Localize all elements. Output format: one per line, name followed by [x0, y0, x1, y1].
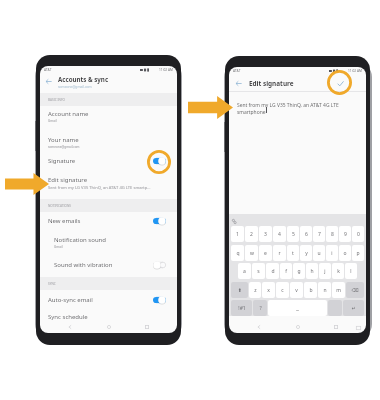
staticText: ⎵ [296, 306, 299, 311]
button[interactable]: y [300, 245, 312, 261]
button[interactable]: 1 [231, 226, 244, 242]
staticText: z [254, 287, 257, 294]
button[interactable]: Save [335, 78, 346, 89]
button[interactable]: 2 [245, 226, 258, 242]
staticText: Accounts & sync [58, 75, 109, 83]
button[interactable]: 0 [352, 226, 364, 242]
staticText: l [350, 268, 352, 275]
button[interactable]: g [293, 263, 305, 279]
staticText: Sound with vibration [54, 261, 113, 269]
button[interactable]: Recents [139, 321, 155, 333]
button[interactable]: z [249, 282, 261, 298]
staticText: someone@gmail.com [48, 145, 80, 149]
button[interactable]: t [287, 245, 299, 261]
button[interactable]: ⎵ [268, 300, 327, 316]
button[interactable]: l [345, 263, 357, 279]
staticText: Auto-sync email [48, 296, 93, 304]
button[interactable]: Sound with vibration [40, 258, 177, 272]
button[interactable]: Notification sound [40, 234, 177, 254]
button[interactable]: ⌫ [346, 282, 364, 298]
button[interactable]: 5 [287, 226, 299, 242]
button[interactable]: Edit signature [40, 174, 177, 194]
button[interactable]: ⬆ [231, 282, 248, 298]
button[interactable]: s [252, 263, 265, 279]
button[interactable]: 3 [259, 226, 272, 242]
staticText: p [356, 250, 360, 257]
button[interactable]: ? [253, 300, 267, 316]
staticText: c [281, 287, 284, 294]
button[interactable]: Toggle [153, 157, 166, 165]
staticText: y [305, 250, 308, 257]
button[interactable]: 9 [339, 226, 351, 242]
staticText: ↵ [351, 305, 356, 311]
staticText: SYNC [48, 282, 56, 286]
staticText: s [257, 268, 260, 275]
staticText: Signature [48, 157, 76, 165]
button[interactable]: Home [101, 321, 117, 333]
staticText: AT&T [233, 69, 241, 73]
staticText: d [271, 268, 275, 275]
staticText: Your name [48, 136, 79, 144]
button[interactable]: Back [40, 72, 177, 91]
button[interactable]: !#1 [231, 300, 252, 316]
button[interactable]: o [339, 245, 351, 261]
button[interactable]: k [332, 263, 344, 279]
staticText: 1 [236, 231, 239, 238]
staticText: !#1 [238, 305, 246, 312]
button[interactable]: 7 [313, 226, 325, 242]
staticText: Account name [48, 110, 89, 118]
staticText: t [292, 250, 294, 257]
button[interactable]: q [231, 245, 244, 261]
button[interactable]: Recents [328, 321, 344, 333]
staticText: i [331, 250, 333, 257]
button[interactable]: Account name [40, 108, 177, 128]
button[interactable]: a [238, 263, 251, 279]
staticText: u [317, 250, 321, 257]
button[interactable]: r [273, 245, 286, 261]
button[interactable]: 8 [326, 226, 338, 242]
button[interactable]: c [276, 282, 289, 298]
staticText: k [337, 268, 340, 275]
button[interactable]: n [318, 282, 331, 298]
button[interactable]: d [266, 263, 279, 279]
button[interactable]: v [290, 282, 303, 298]
staticText: m [336, 287, 341, 294]
button[interactable]: Auto-sync email [40, 293, 177, 307]
button[interactable]: p [352, 245, 364, 261]
staticText: w [250, 250, 254, 257]
other: Back [234, 79, 243, 88]
staticText: Sent from my LG V35 ThinQ, an AT&T 4G LT… [48, 185, 151, 191]
button[interactable]: j [319, 263, 331, 279]
button[interactable]: Toggle [153, 261, 166, 269]
button[interactable]: Home [290, 321, 306, 333]
button[interactable]: Your name [40, 134, 177, 154]
staticText: Sent from my LG V35 ThinQ, an AT&T 4G LT… [237, 102, 339, 115]
button[interactable]: ↵ [343, 300, 364, 316]
button[interactable]: Signature [40, 154, 177, 168]
button[interactable]: Hide keyboard [354, 323, 363, 332]
button[interactable]: b [304, 282, 317, 298]
button[interactable]: u [313, 245, 325, 261]
button[interactable]: New emails [40, 214, 177, 228]
button[interactable]: h [306, 263, 318, 279]
staticText: h [310, 268, 314, 275]
button[interactable]: Back [251, 321, 267, 333]
button[interactable]: 6 [300, 226, 312, 242]
button[interactable]: Back [62, 321, 78, 333]
staticText: 6 [305, 231, 308, 238]
button[interactable]: Toggle [153, 217, 166, 225]
button[interactable]: x [262, 282, 275, 298]
staticText: o [343, 250, 347, 257]
button[interactable]: f [280, 263, 292, 279]
button[interactable]: m [332, 282, 345, 298]
button[interactable]: i [326, 245, 338, 261]
button[interactable]: 4 [273, 226, 286, 242]
staticText: New emails [48, 217, 81, 225]
button[interactable]: Sync schedule [40, 311, 177, 325]
button[interactable]: Toggle [153, 296, 166, 304]
staticText: r [278, 250, 281, 257]
staticText: 11:02 AM [159, 68, 173, 72]
button[interactable]: e [259, 245, 272, 261]
button[interactable]: w [245, 245, 258, 261]
